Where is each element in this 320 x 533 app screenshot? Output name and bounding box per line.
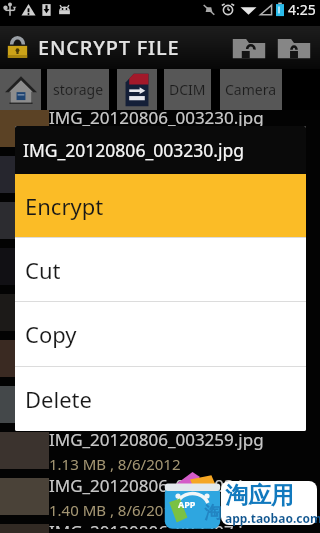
button[interactable]: IMG_20120806_003255.jpg	[0, 386, 320, 432]
button[interactable]: Decrypt folder	[226, 26, 271, 69]
button[interactable]: IMG_20120806_003247.jpg	[0, 294, 320, 340]
staticText: 1.13 MB , 8/6/2012	[49, 454, 181, 474]
staticText: 淘	[204, 502, 221, 523]
button[interactable]: IMG_20120806_003307.jpg	[0, 524, 320, 533]
button[interactable]: Camera	[220, 69, 282, 110]
staticText: 淘应用	[225, 481, 294, 510]
staticText: DCIM	[169, 80, 206, 99]
staticText: Copy	[25, 319, 77, 349]
button[interactable]: IMG_20120806_003259.jpg	[0, 432, 320, 478]
staticText: Cut	[25, 255, 61, 285]
button[interactable]: Delete	[15, 367, 306, 431]
staticText: APP	[178, 498, 196, 510]
button[interactable]: IMG_20120806_003243.jpg	[0, 248, 320, 294]
button[interactable]: SD card	[117, 69, 157, 110]
staticText: IMG_20120806_003243.jpg	[49, 244, 264, 267]
staticText: IMG_20120806_003247.jpg	[49, 290, 264, 313]
button[interactable]: storage	[47, 69, 109, 110]
staticText: IMG_20120806_003259.jpg	[49, 428, 264, 451]
button[interactable]: IMG_20120806_003230.jpg	[0, 110, 320, 156]
button[interactable]: IMG_20120806_003235.jpg	[0, 156, 320, 202]
button[interactable]: IMG_20120806_003239.jpg	[0, 202, 320, 248]
button[interactable]: IMG_20120806_003303.jpg	[0, 478, 320, 524]
button[interactable]: DCIM	[164, 69, 211, 110]
button[interactable]: Cut	[15, 238, 306, 301]
staticText: 4:25	[288, 0, 316, 19]
button[interactable]: Encrypt	[15, 174, 306, 237]
staticText: IMG_20120806_003303.jpg	[49, 474, 264, 497]
button[interactable]: Copy	[15, 302, 306, 366]
staticText: ENCRYPT FILE	[38, 34, 180, 61]
staticText: 2.00 MB , 8/6/2012	[49, 132, 181, 152]
staticText: Encrypt	[25, 191, 104, 221]
staticText: IMG_20120806_003307.jpg	[49, 520, 264, 529]
staticText: app.taobao.com	[225, 510, 320, 526]
staticText: 1.22 MB , 8/6/2012	[49, 270, 181, 290]
staticText: 1.34 MB , 8/6/2012	[49, 362, 181, 382]
staticText: 1.30 MB , 8/6/2012	[49, 224, 181, 244]
staticText: IMG_20120806_003230.jpg	[23, 138, 244, 162]
staticText: IMG_20120806_003230.jpg	[49, 106, 264, 129]
button[interactable]: Home	[0, 69, 41, 110]
staticText: IMG_20120806_003251.jpg	[49, 336, 264, 359]
staticText: IMG_20120806_003239.jpg	[49, 198, 264, 221]
staticText: Delete	[25, 384, 92, 414]
button[interactable]: IMG_20120806_003251.jpg	[0, 340, 320, 386]
staticText: Camera	[225, 80, 277, 99]
button[interactable]: Encrypt folder	[271, 26, 317, 69]
staticText: IMG_20120806_003255.jpg	[49, 382, 264, 405]
staticText: 1.18 MB , 8/6/2012	[49, 316, 181, 336]
staticText: storage	[53, 80, 104, 99]
staticText: IMG_20120806_003235.jpg	[49, 152, 264, 175]
staticText: 1.40 MB , 8/6/2012	[49, 500, 181, 520]
